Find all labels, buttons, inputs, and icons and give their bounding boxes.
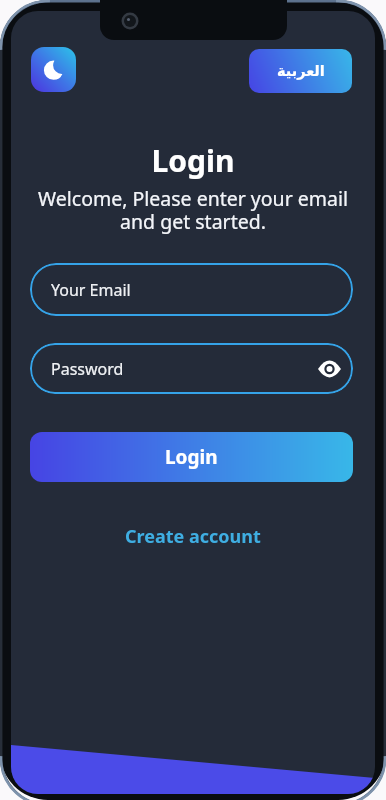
button[interactable]: Create account — [11, 524, 375, 549]
staticText: Welcome, Please enter your email and get… — [11, 185, 375, 235]
button[interactable]: Login — [30, 432, 353, 482]
staticText: Create account — [125, 524, 261, 549]
staticText: العربية — [277, 63, 325, 80]
staticText: Login — [165, 444, 218, 470]
button[interactable]: Password — [30, 343, 353, 394]
staticText: Your Email — [51, 279, 131, 301]
button[interactable]: Your Email — [30, 263, 353, 316]
staticText: Login — [11, 140, 375, 181]
button[interactable]: العربية — [249, 49, 352, 93]
button[interactable] — [31, 47, 76, 92]
staticText: Password — [51, 358, 124, 380]
